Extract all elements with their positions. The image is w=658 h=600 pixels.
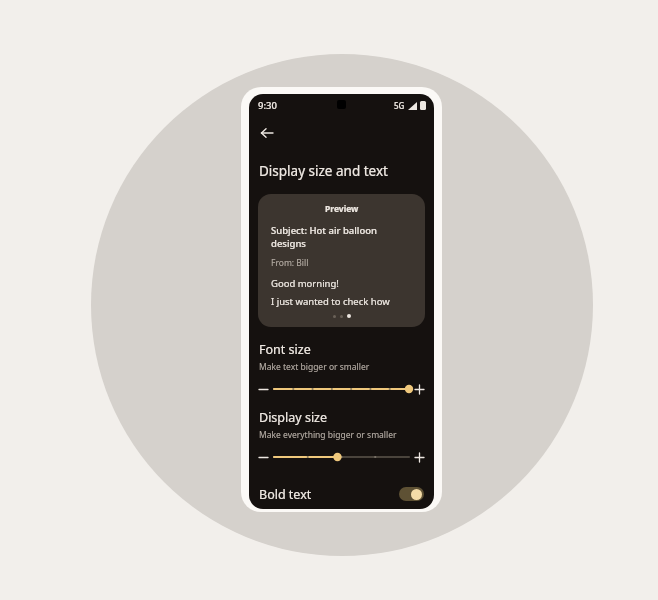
button[interactable]: Back xyxy=(254,120,280,146)
staticText: Good morning! xyxy=(271,277,339,290)
staticText: Preview xyxy=(325,203,359,215)
button[interactable]: Decrease xyxy=(259,380,424,398)
other: Increase xyxy=(415,385,424,394)
staticText: From: Bill xyxy=(271,257,309,269)
staticText: 5G xyxy=(394,100,405,111)
staticText: Subject: Hot air balloon designs xyxy=(271,224,377,250)
staticText: Bold text xyxy=(259,486,312,503)
staticText: Display size and text xyxy=(259,162,388,180)
staticText: Font size xyxy=(259,341,311,358)
other: Decrease xyxy=(259,385,268,394)
other: Increase xyxy=(415,453,424,462)
staticText: I just wanted to check how xyxy=(271,295,390,308)
staticText: Make everything bigger or smaller xyxy=(259,429,397,441)
staticText: 9:30 xyxy=(258,99,277,112)
button[interactable]: Bold text xyxy=(249,479,434,509)
button[interactable]: Preview xyxy=(258,194,425,327)
other: Decrease xyxy=(259,453,268,462)
staticText: Make text bigger or smaller xyxy=(259,361,370,373)
button[interactable]: Decrease xyxy=(259,448,424,466)
staticText: Display size xyxy=(259,409,328,426)
